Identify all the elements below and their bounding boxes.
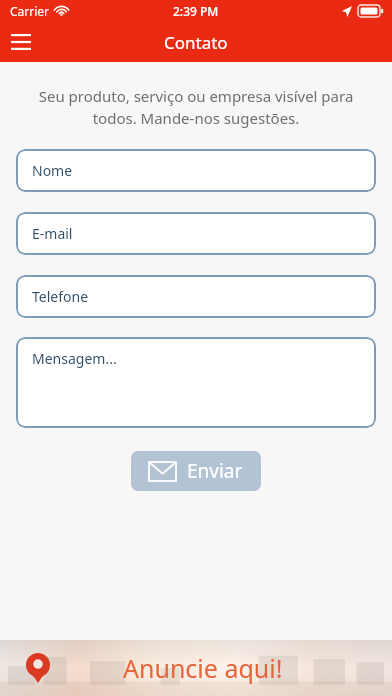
- button[interactable]: Menu: [0, 26, 42, 58]
- button[interactable]: Nome: [16, 149, 376, 192]
- staticText: Contato: [164, 31, 228, 54]
- staticText: Telefone: [32, 287, 89, 306]
- staticText: Mensagem...: [32, 349, 117, 368]
- button[interactable]: Anuncie aqui: [0, 640, 392, 696]
- staticText: Nome: [32, 161, 73, 180]
- button[interactable]: E-mail: [16, 212, 376, 255]
- staticText: E-mail: [32, 224, 73, 243]
- button[interactable]: Mensagem...: [16, 337, 376, 428]
- button[interactable]: Telefone: [16, 275, 376, 318]
- button[interactable]: Enviar: [131, 451, 261, 491]
- staticText: 2:39 PM: [173, 3, 219, 19]
- staticText: Carrier: [10, 3, 50, 19]
- staticText: Enviar: [187, 458, 243, 484]
- staticText: Anuncie aqui!: [123, 651, 283, 685]
- staticText: Seu produto, serviço ou empresa visível …: [18, 86, 374, 129]
